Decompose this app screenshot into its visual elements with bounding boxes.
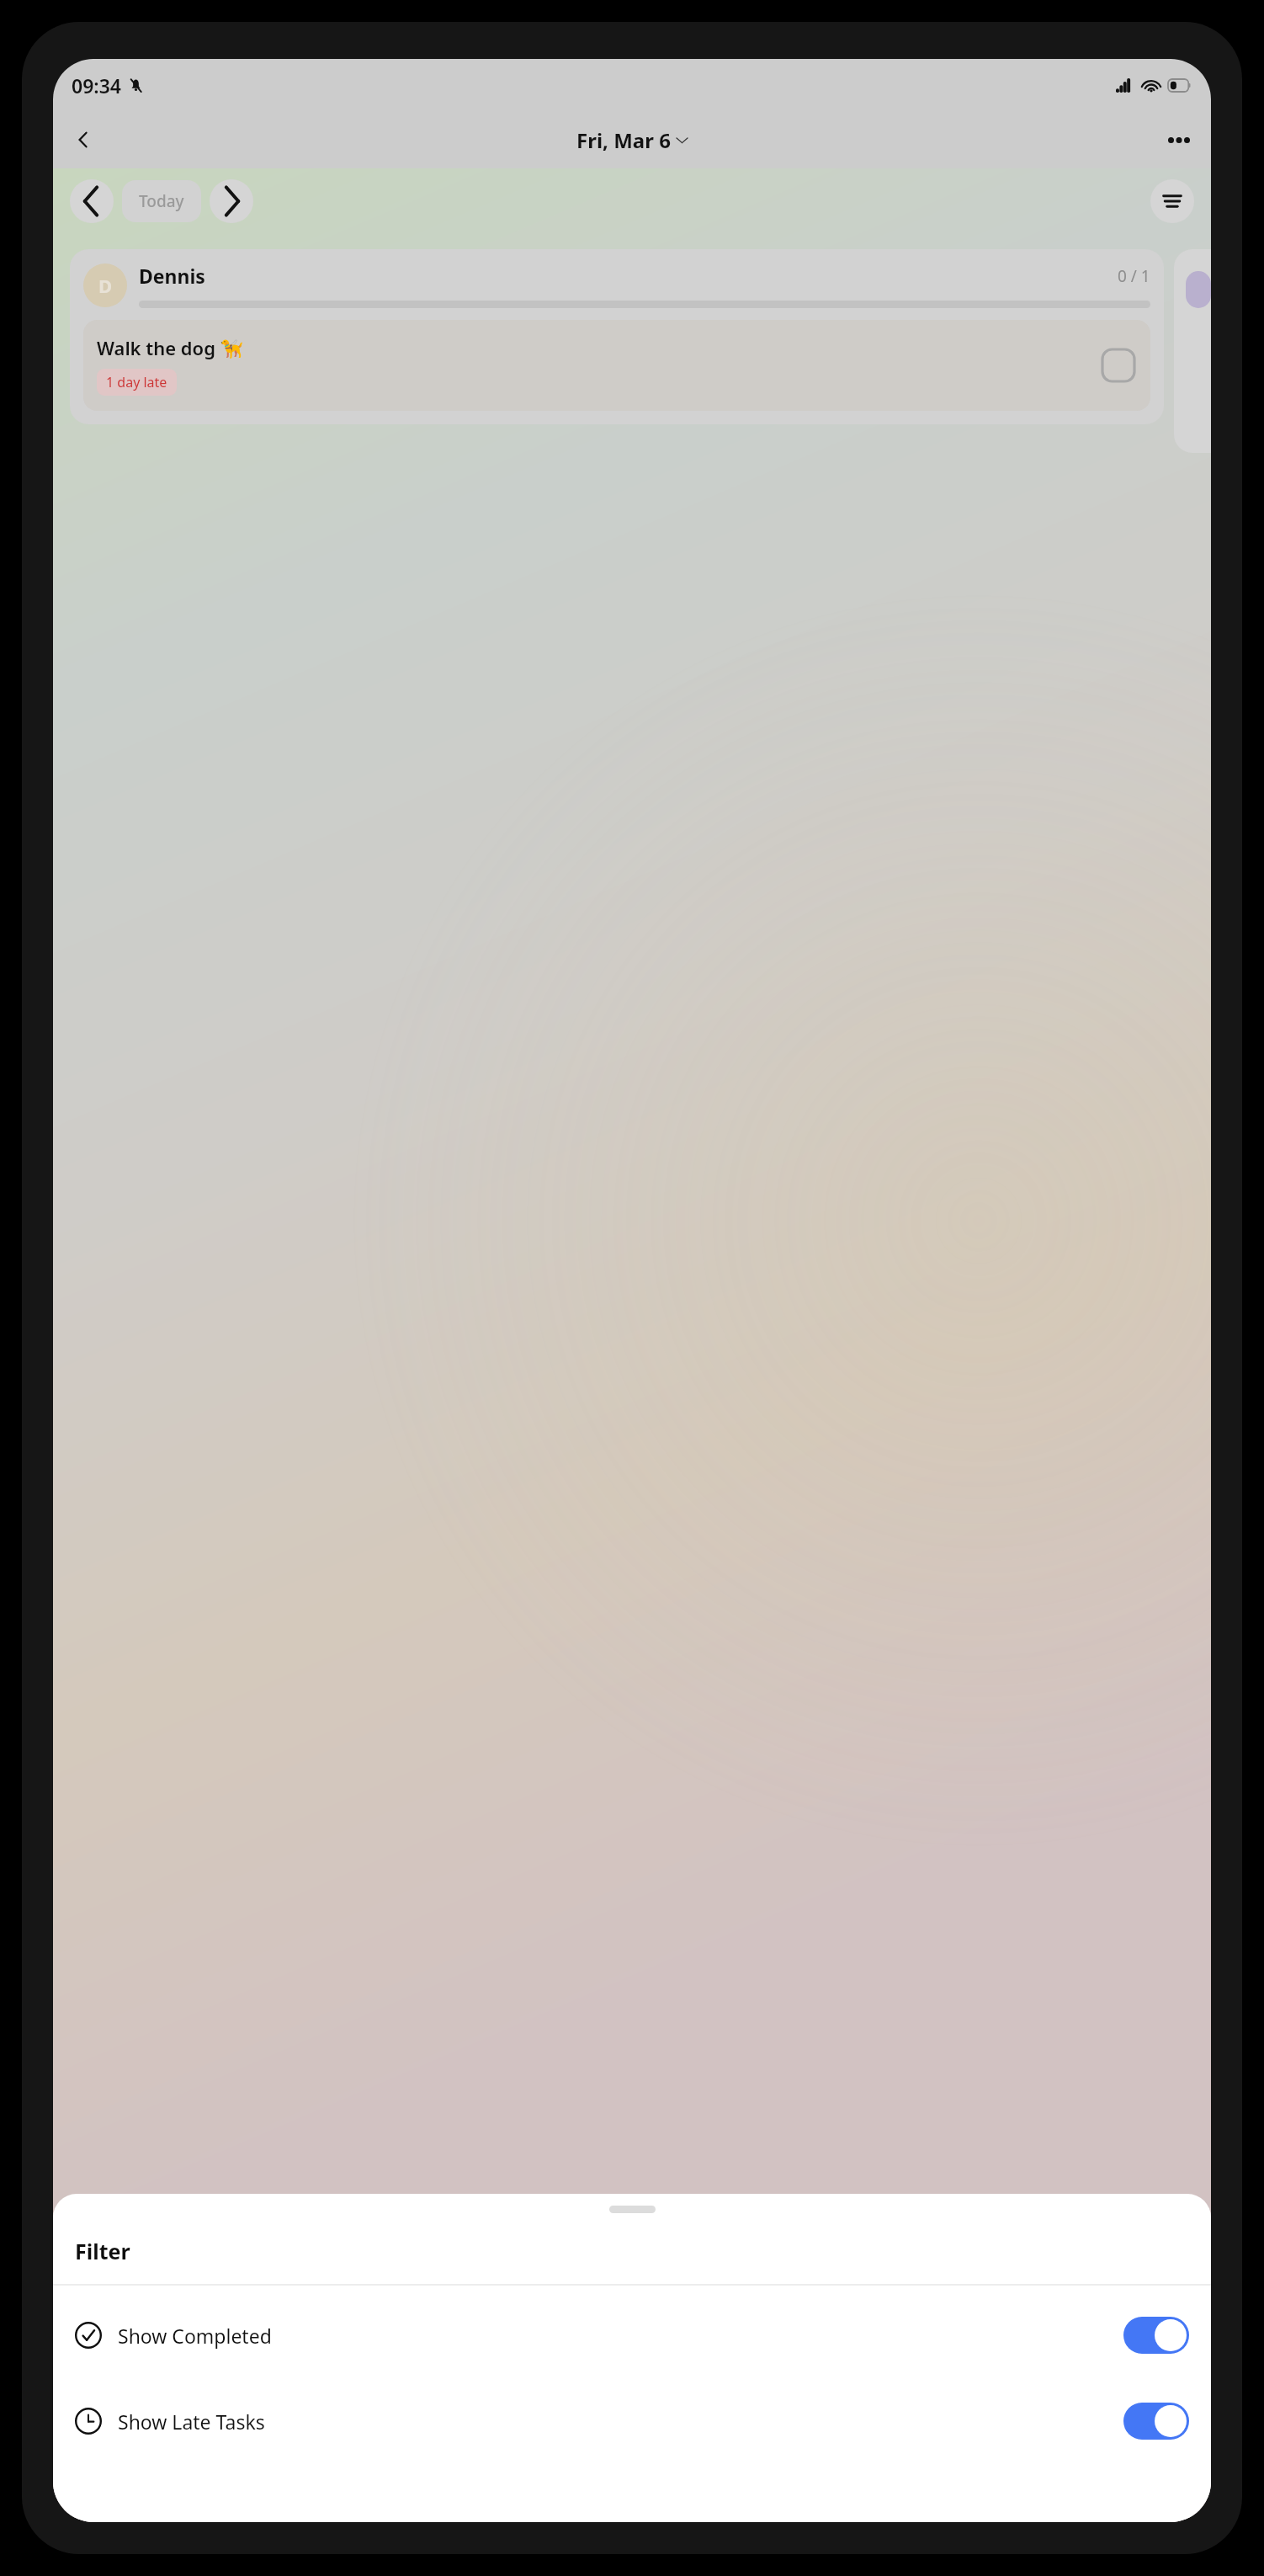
- button[interactable]: Next day: [210, 179, 253, 223]
- button[interactable]: [1174, 249, 1211, 453]
- button[interactable]: Show Completed: [1123, 2317, 1189, 2354]
- button[interactable]: Previous day: [70, 179, 114, 223]
- staticText: 1 day late: [106, 373, 167, 391]
- button[interactable]: Filter: [1150, 179, 1194, 223]
- staticText: Walk the dog 🦮: [97, 335, 244, 360]
- button[interactable]: D: [70, 249, 1164, 424]
- staticText: 09:34: [72, 72, 121, 98]
- button[interactable]: Fri, Mar 6: [570, 123, 694, 157]
- staticText: 0 / 1: [1118, 265, 1150, 287]
- staticText: Fri, Mar 6: [576, 126, 671, 154]
- button[interactable]: Today: [122, 180, 201, 222]
- button[interactable]: Back: [61, 118, 105, 162]
- button[interactable]: Show Completed: [53, 2292, 1211, 2378]
- button[interactable]: Walk the dog 🦮: [83, 320, 1150, 411]
- button[interactable]: Show Late Tasks: [53, 2378, 1211, 2464]
- staticText: Show Completed: [118, 2323, 272, 2349]
- button[interactable]: More options: [1157, 118, 1201, 162]
- staticText: Dennis: [139, 263, 205, 289]
- staticText: Today: [139, 190, 184, 212]
- button[interactable]: Show Late Tasks: [1123, 2403, 1189, 2440]
- button[interactable]: Mark complete: [1100, 347, 1137, 384]
- staticText: D: [98, 273, 113, 298]
- staticText: Filter: [75, 2237, 130, 2265]
- staticText: Show Late Tasks: [118, 2408, 265, 2435]
